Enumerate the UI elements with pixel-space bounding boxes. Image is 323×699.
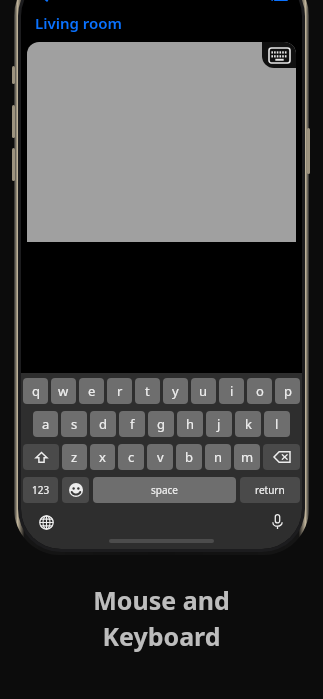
button[interactable]: Change keyboard	[35, 511, 57, 533]
staticText: h	[186, 415, 195, 433]
button[interactable]: u	[191, 378, 216, 404]
button[interactable]: n	[205, 444, 231, 470]
staticText: j	[217, 415, 221, 433]
button[interactable]: t	[135, 378, 160, 404]
button[interactable]: i	[219, 378, 244, 404]
button[interactable]: s	[61, 411, 87, 437]
staticText: u	[199, 382, 208, 400]
staticText: m	[241, 448, 254, 466]
button[interactable]: w	[51, 378, 76, 404]
button[interactable]: v	[147, 444, 173, 470]
staticText: x	[99, 448, 106, 466]
staticText: z	[71, 448, 78, 466]
staticText: v	[157, 448, 164, 466]
staticText: t	[145, 382, 150, 400]
button[interactable]: a	[33, 411, 58, 437]
staticText: w	[58, 382, 69, 400]
staticText: g	[157, 415, 165, 433]
button[interactable]: o	[247, 378, 272, 404]
staticText: r	[117, 382, 123, 400]
button[interactable]: e	[79, 378, 104, 404]
staticText: c	[128, 448, 135, 466]
button[interactable]: h	[177, 411, 203, 437]
button[interactable]: r	[107, 378, 132, 404]
staticText: k	[245, 415, 252, 433]
button[interactable]: f	[119, 411, 145, 437]
button[interactable]: q	[23, 378, 48, 404]
staticText: q	[32, 382, 40, 400]
staticText: return	[255, 483, 285, 497]
staticText: l	[275, 415, 279, 433]
button[interactable]: Delete	[263, 444, 300, 470]
staticText: y	[172, 382, 179, 400]
button[interactable]: b	[176, 444, 202, 470]
button[interactable]: c	[118, 444, 144, 470]
staticText: Living room	[35, 13, 122, 33]
button[interactable]: y	[163, 378, 188, 404]
button[interactable]: m	[234, 444, 260, 470]
button[interactable]: p	[275, 378, 300, 404]
staticText: d	[99, 415, 107, 433]
staticText: b	[185, 448, 193, 466]
button[interactable]: return	[240, 477, 300, 503]
button[interactable]: 123	[23, 477, 58, 503]
staticText: 123	[32, 483, 50, 497]
staticText: Keyboard	[102, 619, 221, 653]
staticText: f	[130, 415, 135, 433]
button[interactable]: Emoji	[62, 477, 89, 503]
button[interactable]: z	[62, 444, 87, 470]
button[interactable]: k	[235, 411, 261, 437]
button[interactable]: Shift	[23, 444, 59, 470]
button[interactable]: Back	[31, 0, 57, 8]
button[interactable]: g	[148, 411, 174, 437]
staticText: Mouse and	[93, 583, 230, 617]
button[interactable]: j	[206, 411, 232, 437]
staticText: s	[71, 415, 78, 433]
button[interactable]: l	[264, 411, 290, 437]
staticText: space	[151, 483, 178, 497]
button[interactable]: d	[90, 411, 116, 437]
button[interactable]: Dictate	[266, 511, 288, 533]
staticText: e	[88, 382, 96, 400]
button[interactable]: space	[93, 477, 236, 503]
button[interactable]: Toggle keyboard	[262, 42, 296, 68]
staticText: o	[256, 382, 264, 400]
staticText: n	[214, 448, 223, 466]
staticText: i	[230, 382, 234, 400]
staticText: p	[284, 382, 292, 400]
button[interactable]: List	[266, 0, 292, 8]
staticText: a	[42, 415, 50, 433]
button[interactable]: x	[90, 444, 115, 470]
